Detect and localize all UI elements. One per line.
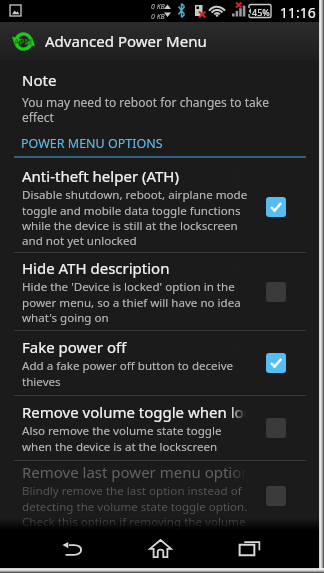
staticText: Remove volume toggle when locked [22, 402, 246, 422]
staticText: You may need to reboot for changes to ta… [22, 94, 282, 125]
button[interactable]: Hide ATH description [0, 253, 324, 331]
staticText: Remove last power menu option [22, 462, 246, 482]
staticText: 11:16 [280, 3, 316, 22]
staticText: Anti-theft helper (ATH) [22, 166, 179, 186]
staticText: Hide the 'Device is locked' option in th… [22, 279, 250, 325]
button[interactable]: Remove last power menu option [0, 461, 324, 530]
button[interactable]: Enabled [266, 197, 286, 217]
staticText: APM [14, 36, 33, 47]
button[interactable]: Recent apps [205, 527, 293, 570]
staticText: 45% [252, 6, 270, 18]
button[interactable]: Remove volume toggle when locked [0, 396, 324, 461]
staticText: Add a fake power off button to deceive t… [22, 358, 250, 389]
button[interactable]: Anti-theft helper (ATH) [0, 161, 324, 253]
staticText: Note [22, 70, 57, 90]
button[interactable]: Back [28, 527, 116, 570]
button[interactable]: Disabled [266, 418, 286, 438]
staticText: Hide ATH description [22, 258, 170, 278]
staticText: Also remove the volume state toggle when… [22, 423, 250, 454]
staticText: Disable shutdown, reboot, airplane mode … [22, 187, 250, 248]
staticText: Advanced Power Menu [45, 31, 207, 51]
staticText: Fake power off [22, 337, 127, 357]
button[interactable]: Enabled [266, 353, 286, 373]
button[interactable]: Fake power off [0, 331, 324, 396]
button[interactable]: Disabled [266, 486, 286, 506]
button[interactable]: Home [116, 527, 204, 570]
staticText: Blindly remove the last option instead o… [22, 483, 250, 529]
button[interactable]: Disabled [266, 282, 286, 302]
staticText: 0 KB [151, 2, 165, 12]
staticText: POWER MENU OPTIONS [21, 135, 163, 152]
staticText: 0 KB [151, 12, 165, 22]
